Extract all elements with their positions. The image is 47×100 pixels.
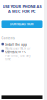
button[interactable]: Connect to PC — [1, 50, 42, 56]
staticText: A MIC FOR PC — [8, 9, 36, 14]
staticText: Pair once, use any time — [5, 54, 30, 61]
staticText: DOWNLOAD NOW — [10, 22, 34, 26]
staticText: Connect to PC — [5, 50, 26, 53]
button[interactable]: Install the app — [1, 43, 42, 49]
staticText: Install the app — [5, 43, 27, 46]
staticText: USE YOUR PHONE AS — [2, 4, 41, 9]
staticText: Works over Wi-Fi or USB cable — [5, 47, 30, 54]
button[interactable]: DOWNLOAD NOW — [1, 20, 42, 28]
staticText: Contents — [1, 36, 14, 40]
